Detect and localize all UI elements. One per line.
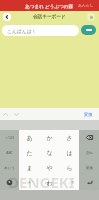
button[interactable]: Send	[81, 25, 96, 35]
button[interactable]: Backspace	[79, 130, 99, 145]
button[interactable]: わ	[39, 175, 59, 190]
staticText: ☆123	[5, 135, 14, 140]
staticText: こんばんは！	[7, 28, 37, 34]
staticText: や	[46, 164, 53, 172]
staticText: た	[26, 149, 33, 157]
button[interactable]: さ	[59, 130, 79, 145]
staticText: ABC	[6, 150, 13, 155]
button[interactable]: ☆123	[0, 130, 19, 145]
button[interactable]: Next	[11, 109, 22, 120]
button[interactable]: こんばんは！	[2, 25, 79, 36]
button[interactable]: 変換	[79, 160, 99, 175]
button[interactable]: ABC	[0, 145, 19, 160]
button[interactable]: 空白	[79, 145, 99, 160]
button[interactable]: あいう	[0, 160, 19, 175]
staticText: ゛小゜	[24, 181, 34, 185]
button[interactable]: か	[39, 130, 59, 145]
staticText: 変換	[86, 166, 93, 170]
staticText: ま	[26, 164, 33, 172]
button[interactable]: 変換	[84, 112, 99, 117]
button[interactable]: な	[39, 145, 59, 160]
button[interactable]: Voice input	[0, 175, 19, 190]
button[interactable]: ま	[19, 160, 39, 175]
button[interactable]: あ	[19, 130, 39, 145]
button[interactable]: は	[59, 145, 79, 160]
staticText: DENGEKI	[8, 172, 75, 192]
button[interactable]: Menu	[87, 13, 95, 21]
staticText: 会話キーボード	[33, 14, 66, 20]
button[interactable]: Back	[3, 13, 11, 21]
other: Voice input	[6, 179, 13, 186]
staticText: あつまれ どうぶつの森	[25, 3, 74, 9]
button[interactable]: や	[39, 160, 59, 175]
staticText: あたらし	[78, 3, 94, 8]
button[interactable]: た	[19, 145, 39, 160]
staticText: 変換	[84, 112, 93, 117]
staticText: か	[46, 134, 53, 142]
button[interactable]: Enter	[79, 175, 99, 190]
staticText: 空白	[86, 151, 93, 155]
other: Enter	[86, 179, 93, 186]
staticText: は	[66, 149, 73, 157]
staticText: 、。?!	[65, 181, 74, 185]
button[interactable]: Previous	[0, 109, 11, 120]
staticText: あいう	[4, 166, 15, 170]
staticText: さ	[66, 134, 73, 142]
button[interactable]: ゛小゜	[19, 175, 39, 190]
staticText: わ	[46, 179, 53, 187]
staticText: な	[46, 149, 53, 157]
button[interactable]: 、。?!	[59, 175, 79, 190]
button[interactable]: ら	[59, 160, 79, 175]
staticText: ら	[66, 164, 73, 172]
staticText: あ	[26, 134, 33, 142]
other: Backspace	[86, 134, 93, 141]
